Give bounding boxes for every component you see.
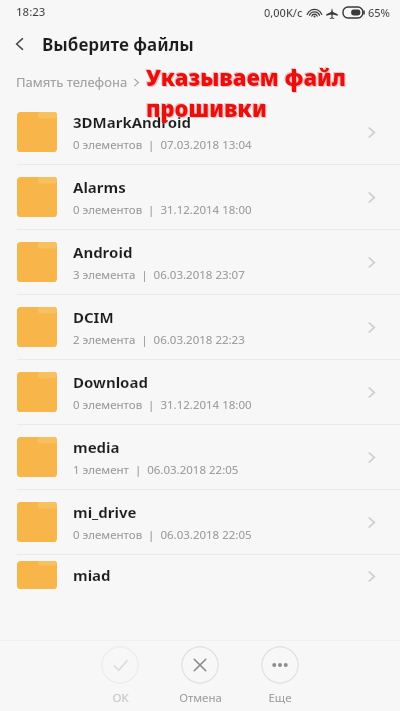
staticText: Указываем файл [146, 62, 347, 92]
button[interactable]: mi_drive [0, 490, 400, 554]
staticText: Download [73, 372, 148, 392]
staticText: DCIM [73, 307, 114, 327]
staticText: 65% [368, 5, 390, 20]
staticText: miad [73, 565, 111, 585]
staticText: 0 элементов | 31.12.2014 18:00 [73, 397, 252, 413]
staticText: 1 элемент | 06.03.2018 22:05 [73, 462, 239, 478]
button[interactable]: Отмена [169, 644, 231, 708]
staticText: 0 элементов | 06.03.2018 22:05 [73, 527, 252, 543]
staticText: 3DMarkAndroid [73, 112, 192, 132]
staticText: прошивки [145, 92, 266, 122]
staticText: Выберите файлы [42, 33, 194, 56]
staticText: 3 элемента | 06.03.2018 23:07 [73, 267, 245, 283]
button[interactable]: DCIM [0, 295, 400, 359]
button[interactable]: 3DMarkAndroid [0, 100, 400, 164]
staticText: 0,00K/c [264, 5, 303, 20]
staticText: прошивки [146, 93, 267, 123]
staticText: Alarms [73, 177, 126, 197]
staticText: Android [73, 242, 133, 262]
staticText: OK [112, 690, 129, 706]
staticText: 0 элементов | 31.12.2014 18:00 [73, 202, 252, 218]
staticText: Еще [268, 690, 292, 706]
button[interactable]: Назад [0, 24, 40, 64]
button[interactable]: Android [0, 230, 400, 294]
button[interactable]: Еще [249, 644, 311, 708]
button[interactable]: OK [89, 644, 151, 708]
staticText: media [73, 437, 120, 457]
button[interactable]: media [0, 425, 400, 489]
button[interactable]: miad [0, 555, 400, 589]
staticText: Указываем файл [147, 63, 348, 93]
staticText: 0 элементов | 07.03.2018 13:04 [73, 137, 252, 153]
button[interactable]: Download [0, 360, 400, 424]
staticText: Память телефона [16, 73, 128, 91]
staticText: 2 элемента | 06.03.2018 22:23 [73, 332, 245, 348]
staticText: Указываем файл [145, 61, 346, 91]
staticText: mi_drive [73, 502, 137, 522]
staticText: прошивки [147, 94, 268, 124]
staticText: Отмена [179, 690, 222, 706]
button[interactable]: Alarms [0, 165, 400, 229]
staticText: 18:23 [16, 4, 46, 20]
button[interactable]: Память телефона [16, 73, 128, 91]
